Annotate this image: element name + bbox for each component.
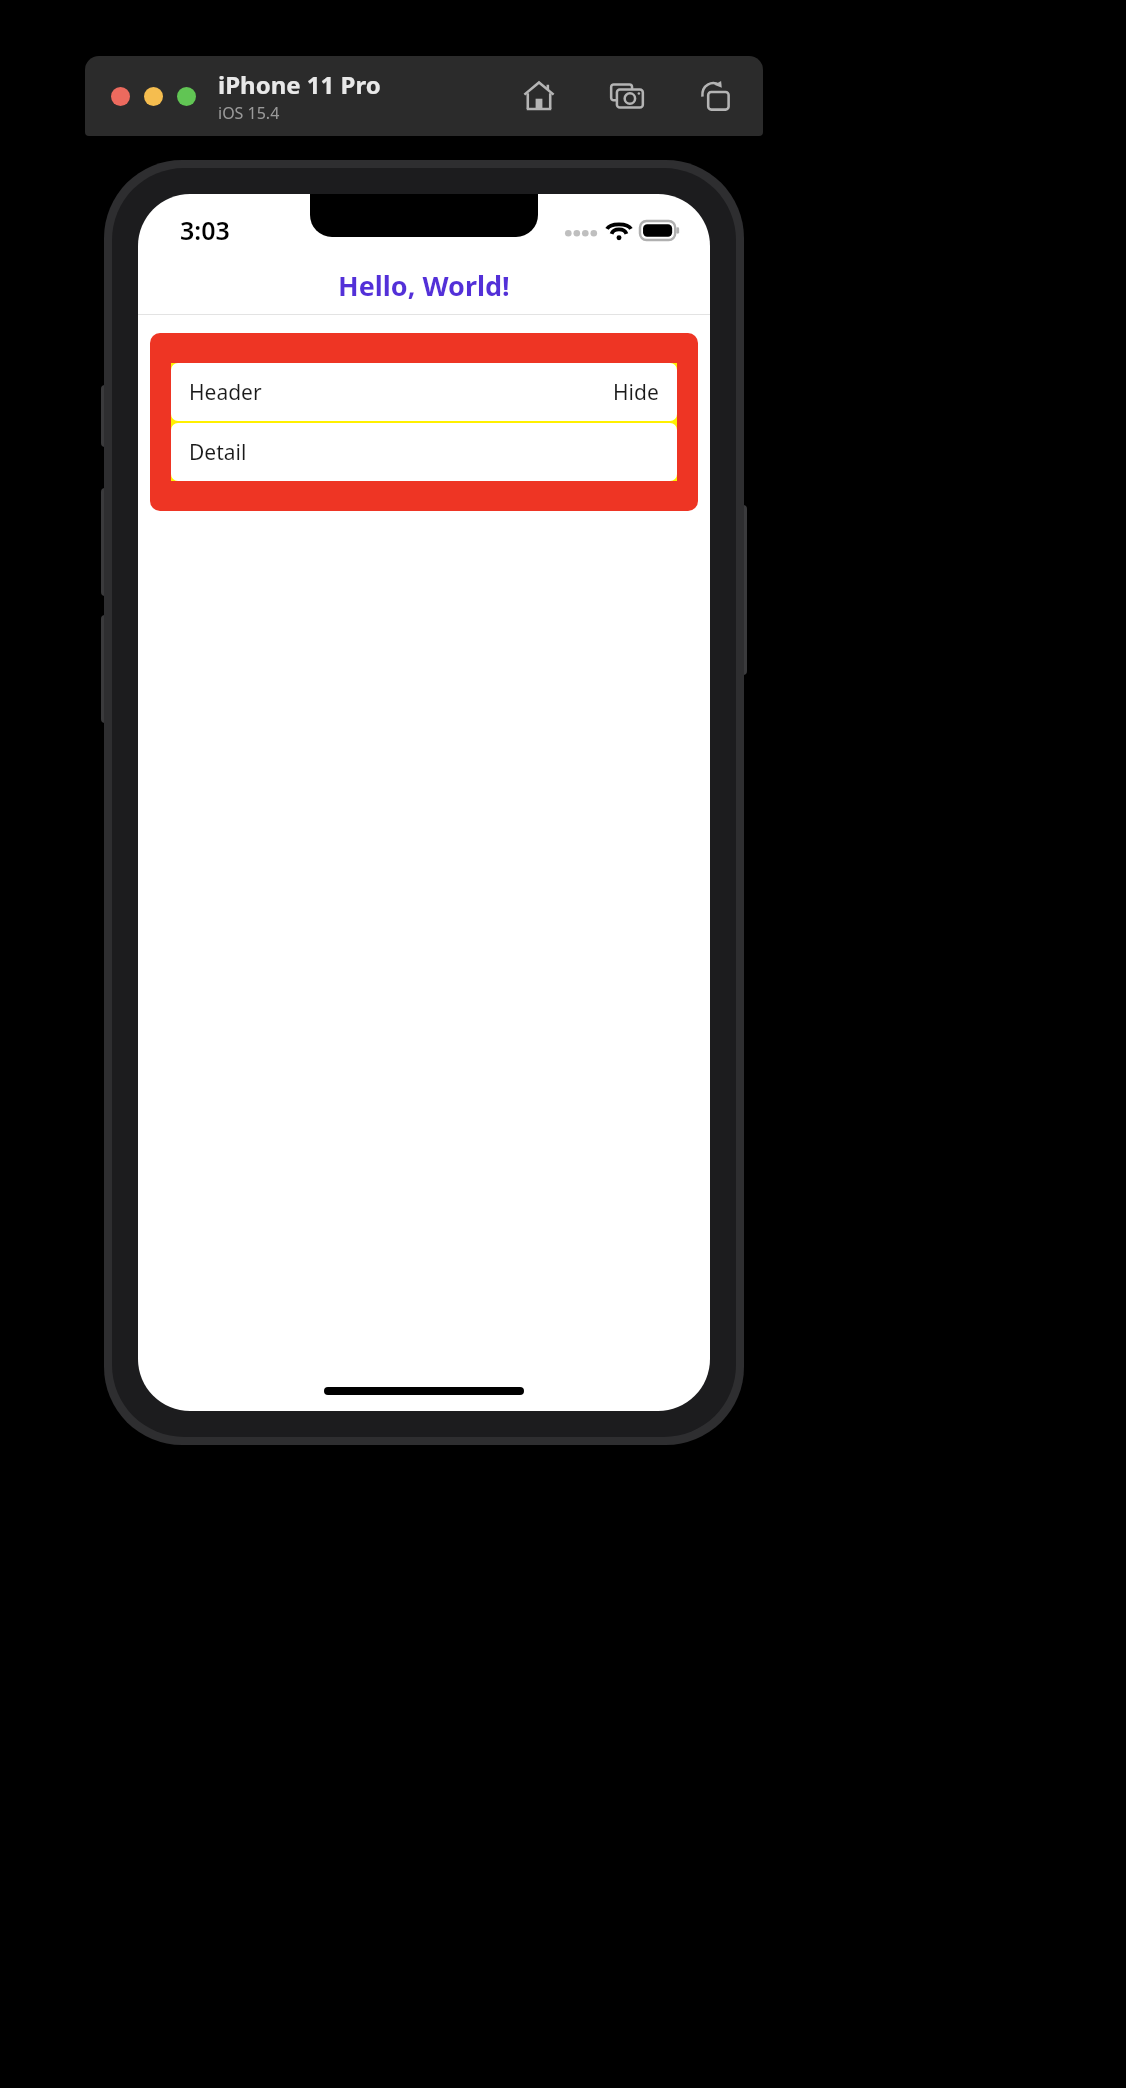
button[interactable]: Zoom <box>177 87 196 106</box>
button[interactable]: Close <box>111 87 130 106</box>
button[interactable]: Home <box>517 74 561 118</box>
button[interactable]: Minimise <box>144 87 163 106</box>
staticText: iOS 15.4 <box>218 102 280 124</box>
button[interactable]: Header <box>171 363 677 421</box>
staticText: Hide <box>613 378 659 407</box>
button[interactable]: Detail <box>171 423 677 481</box>
staticText: iPhone 11 Pro <box>218 68 381 101</box>
staticText: 3:03 <box>180 213 230 247</box>
staticText: Hello, World! <box>338 267 510 304</box>
button[interactable]: Screenshot <box>605 74 649 118</box>
button[interactable]: Rotate <box>693 74 737 118</box>
staticText: Header <box>189 378 262 407</box>
staticText: Detail <box>189 438 247 467</box>
